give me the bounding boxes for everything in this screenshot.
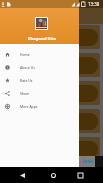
button[interactable]: Rate Us (0, 74, 79, 87)
button[interactable] (0, 109, 100, 133)
staticText: Share (20, 91, 30, 96)
staticText: More Apps (20, 104, 38, 109)
button[interactable] (0, 25, 100, 49)
button[interactable]: Home (0, 48, 79, 61)
staticText: Rate Us (20, 78, 33, 83)
staticText: About Us (20, 65, 35, 70)
staticText: Home (20, 52, 30, 57)
button[interactable] (0, 81, 100, 105)
button[interactable]: More Apps (0, 100, 79, 113)
button[interactable] (0, 165, 100, 183)
staticText: Bhagwad Gita (28, 36, 56, 41)
button[interactable] (0, 53, 100, 77)
button[interactable]: Back (16, 169, 28, 181)
button[interactable]: Recents (74, 169, 86, 181)
button[interactable]: About Us (0, 61, 79, 74)
button[interactable]: Share (0, 87, 79, 100)
staticText: F (80, 158, 83, 165)
staticText: lash (83, 158, 94, 165)
button[interactable] (0, 137, 100, 161)
button[interactable]: Home (47, 169, 59, 181)
staticText: 13:38 (88, 1, 100, 7)
